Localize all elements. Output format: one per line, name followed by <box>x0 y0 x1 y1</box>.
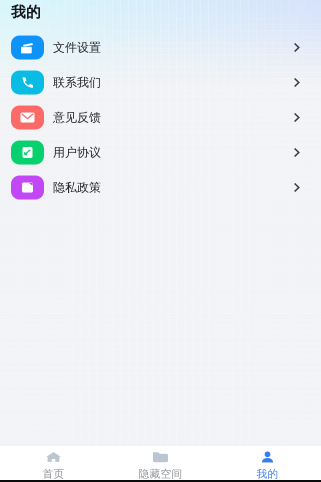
staticText: 我的 <box>256 467 278 480</box>
button[interactable]: 隐私政策 <box>0 170 321 205</box>
button[interactable]: 联系我们 <box>0 65 321 100</box>
button[interactable]: 首页 <box>0 446 107 480</box>
button[interactable]: 我的 <box>214 446 321 480</box>
button[interactable]: 用户协议 <box>0 135 321 170</box>
staticText: 首页 <box>42 467 64 480</box>
staticText: 隐私政策 <box>53 180 101 195</box>
staticText: 文件设置 <box>53 40 101 55</box>
button[interactable]: 文件设置 <box>0 30 321 65</box>
staticText: 联系我们 <box>53 75 101 90</box>
staticText: 隐藏空间 <box>138 467 182 480</box>
button[interactable]: 意见反馈 <box>0 100 321 135</box>
staticText: 用户协议 <box>53 145 101 160</box>
staticText: 我的 <box>11 3 41 21</box>
button[interactable]: 隐藏空间 <box>107 446 214 480</box>
staticText: 意见反馈 <box>53 110 101 125</box>
